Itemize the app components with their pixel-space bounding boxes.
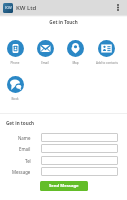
button[interactable] bbox=[41, 133, 118, 142]
button[interactable]: Email bbox=[30, 40, 60, 65]
button[interactable] bbox=[41, 156, 118, 165]
button[interactable]: More options bbox=[110, 0, 125, 15]
staticText: Get in Touch bbox=[0, 19, 127, 25]
staticText: Message bbox=[12, 169, 31, 175]
staticText: Email bbox=[41, 61, 49, 65]
button[interactable]: Book bbox=[0, 76, 30, 101]
button[interactable]: Phone bbox=[0, 40, 30, 65]
staticText: Add to contacts bbox=[96, 61, 118, 65]
button[interactable]: Map bbox=[60, 40, 91, 65]
button[interactable]: Add to contacts bbox=[91, 40, 122, 65]
staticText: Book bbox=[11, 97, 19, 101]
button[interactable] bbox=[41, 144, 118, 153]
staticText: KW Ltd bbox=[16, 4, 37, 12]
staticText: Name bbox=[18, 135, 31, 141]
staticText: Get in touch bbox=[6, 120, 35, 126]
staticText: KW bbox=[5, 5, 12, 11]
button[interactable] bbox=[41, 167, 118, 176]
staticText: Tel bbox=[25, 158, 31, 164]
staticText: Phone bbox=[10, 61, 20, 65]
button[interactable]: Send Message bbox=[40, 181, 88, 191]
staticText: Map bbox=[72, 61, 79, 65]
staticText: Send Message bbox=[49, 183, 79, 189]
staticText: Email bbox=[19, 146, 31, 152]
